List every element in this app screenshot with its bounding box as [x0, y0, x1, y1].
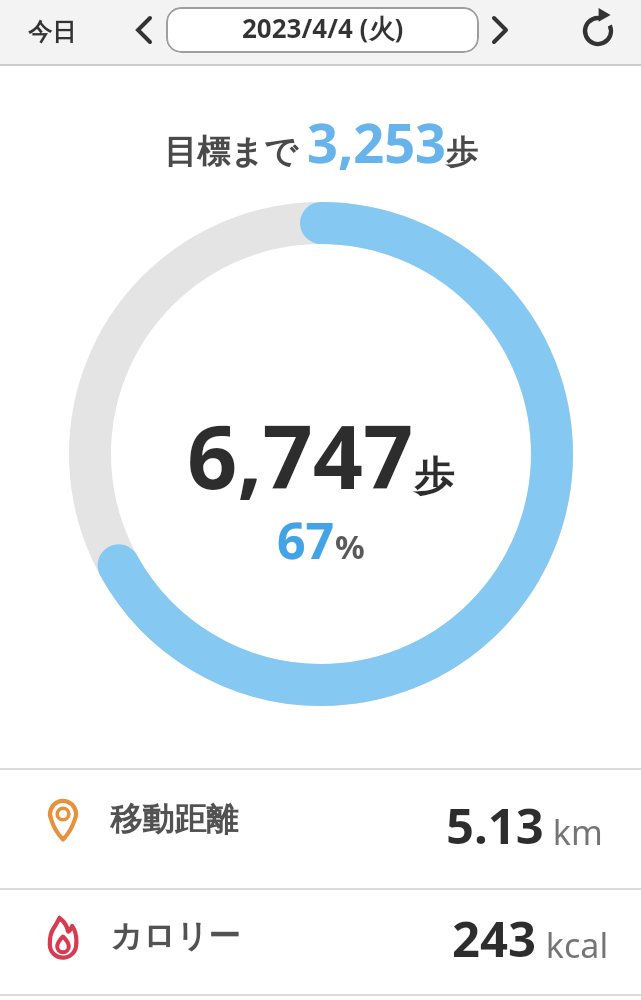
button[interactable]: 2023/4/4 (火) [166, 7, 479, 53]
button[interactable]: カロリー [0, 890, 641, 994]
staticText: % [335, 524, 365, 569]
staticText: 67 [277, 506, 335, 574]
staticText: 3,253 [307, 105, 446, 179]
staticText: カロリー [110, 916, 241, 956]
staticText: kcal [537, 922, 609, 968]
staticText: 6,747 [187, 395, 414, 515]
staticText: 目標まで [164, 128, 307, 173]
button[interactable] [576, 6, 620, 54]
staticText: km [544, 809, 603, 855]
staticText: 移動距離 [110, 799, 238, 839]
button[interactable]: 今日 [17, 8, 87, 56]
button[interactable] [482, 10, 518, 50]
staticText: 歩 [414, 451, 454, 501]
staticText: 2023/4/4 (火) [242, 10, 404, 46]
staticText: 243 [452, 905, 537, 972]
button[interactable] [126, 10, 162, 50]
staticText: 歩 [446, 132, 478, 172]
staticText: 今日 [28, 17, 76, 47]
staticText: 5.13 [446, 792, 544, 859]
button[interactable]: 移動距離 [0, 770, 641, 888]
